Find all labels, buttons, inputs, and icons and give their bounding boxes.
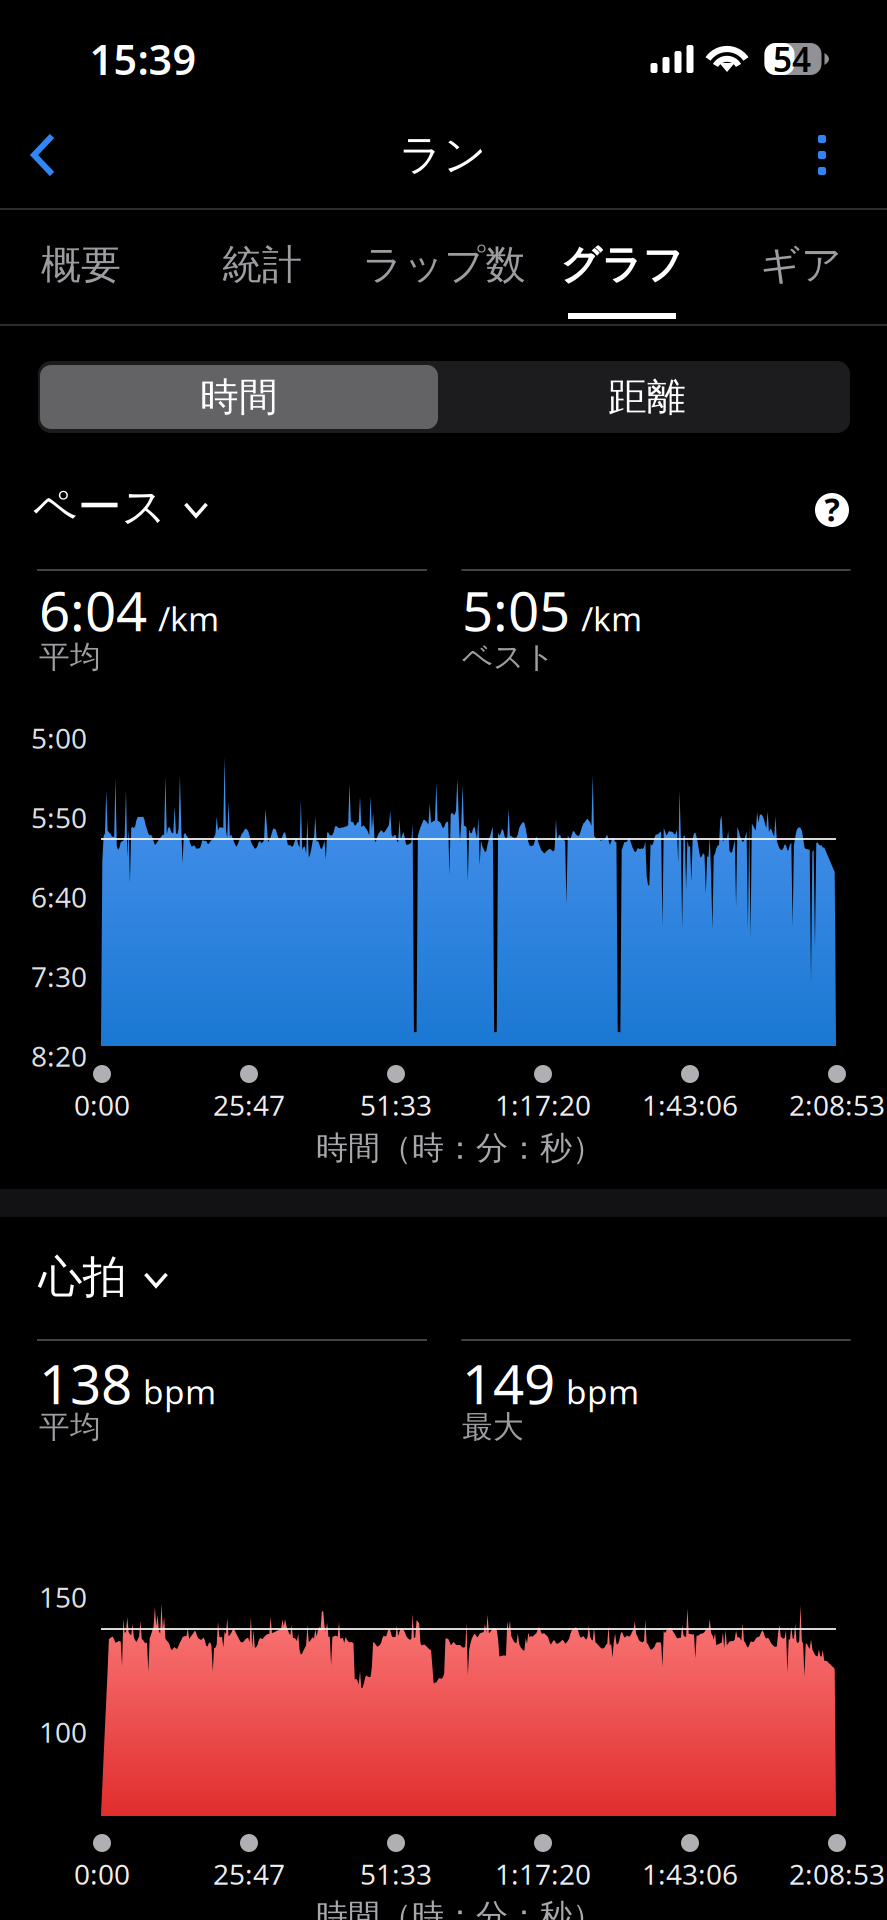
staticText: 時間 bbox=[200, 373, 278, 421]
staticText: 0:00 bbox=[74, 1855, 130, 1893]
staticText: 51:33 bbox=[360, 1086, 432, 1124]
staticText: 138 bbox=[39, 1347, 132, 1419]
staticText: 最大 bbox=[462, 1408, 524, 1446]
button[interactable]: More options bbox=[782, 111, 862, 199]
staticText: 1:43:06 bbox=[642, 1855, 738, 1893]
button[interactable]: 心拍 bbox=[38, 1247, 169, 1307]
staticText: 7:30 bbox=[31, 958, 87, 995]
button[interactable]: Back bbox=[0, 111, 88, 199]
staticText: 5:00 bbox=[31, 719, 87, 757]
staticText: ラン bbox=[399, 129, 487, 181]
staticText: /km bbox=[581, 596, 642, 640]
button[interactable]: グラフ bbox=[533, 209, 711, 321]
staticText: 1:17:20 bbox=[495, 1855, 591, 1893]
button[interactable]: Help bbox=[804, 482, 860, 538]
staticText: 54 bbox=[773, 37, 811, 81]
staticText: 5:05 bbox=[462, 574, 570, 646]
staticText: ラップ数 bbox=[362, 240, 525, 289]
staticText: 2:08:53 bbox=[789, 1855, 885, 1893]
staticText: 1:43:06 bbox=[642, 1086, 738, 1124]
staticText: 概要 bbox=[41, 240, 121, 289]
staticText: 2:08:53 bbox=[789, 1086, 885, 1124]
staticText: 統計 bbox=[222, 240, 302, 289]
button[interactable]: 概要 bbox=[0, 209, 170, 321]
button[interactable]: 時間 bbox=[40, 365, 438, 429]
staticText: 平均 bbox=[39, 1408, 101, 1446]
staticText: bpm bbox=[566, 1369, 639, 1413]
staticText: ペース bbox=[32, 480, 166, 534]
staticText: 時間（時：分：秒） bbox=[316, 1896, 604, 1920]
staticText: 距離 bbox=[608, 373, 686, 421]
button[interactable]: ペース bbox=[32, 477, 209, 537]
staticText: bpm bbox=[143, 1369, 216, 1413]
staticText: 149 bbox=[462, 1347, 555, 1419]
staticText: ? bbox=[824, 488, 839, 530]
staticText: 時間（時：分：秒） bbox=[316, 1128, 604, 1168]
button[interactable]: ギア bbox=[712, 209, 887, 321]
staticText: 心拍 bbox=[38, 1250, 126, 1304]
staticText: 0:00 bbox=[74, 1086, 130, 1124]
button[interactable]: 統計 bbox=[173, 209, 351, 321]
staticText: 25:47 bbox=[213, 1086, 285, 1124]
staticText: ベスト bbox=[462, 638, 555, 676]
staticText: 25:47 bbox=[213, 1855, 285, 1893]
staticText: ギア bbox=[760, 240, 842, 289]
staticText: グラフ bbox=[560, 240, 683, 289]
staticText: 100 bbox=[39, 1713, 87, 1751]
staticText: 150 bbox=[39, 1578, 87, 1616]
staticText: 15:39 bbox=[89, 32, 196, 86]
staticText: 51:33 bbox=[360, 1855, 432, 1893]
button[interactable]: 距離 bbox=[448, 365, 846, 429]
button[interactable]: ラップ数 bbox=[355, 209, 533, 321]
staticText: 1:17:20 bbox=[495, 1086, 591, 1124]
staticText: 6:40 bbox=[31, 878, 87, 916]
staticText: 平均 bbox=[39, 638, 101, 676]
staticText: 6:04 bbox=[39, 574, 147, 646]
staticText: 8:20 bbox=[31, 1037, 87, 1075]
staticText: /km bbox=[158, 596, 219, 640]
staticText: 5:50 bbox=[31, 799, 87, 836]
